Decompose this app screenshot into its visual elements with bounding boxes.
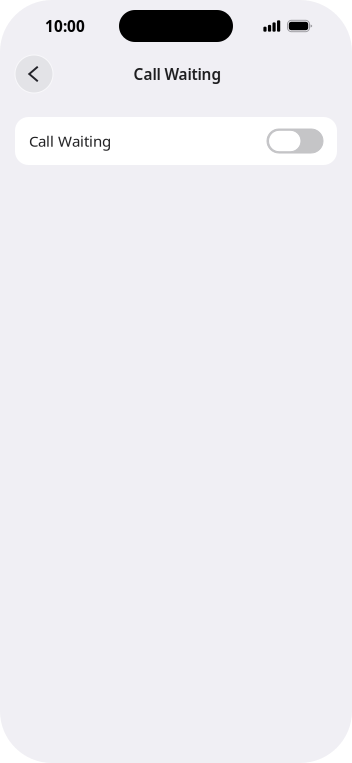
button[interactable]: Call Waiting [15, 117, 337, 165]
staticText: Call Waiting [133, 64, 221, 84]
button[interactable]: Call Waiting [267, 129, 323, 153]
staticText: Call Waiting [29, 131, 111, 151]
button[interactable]: Back [14, 54, 53, 93]
staticText: 10:00 [45, 16, 85, 36]
